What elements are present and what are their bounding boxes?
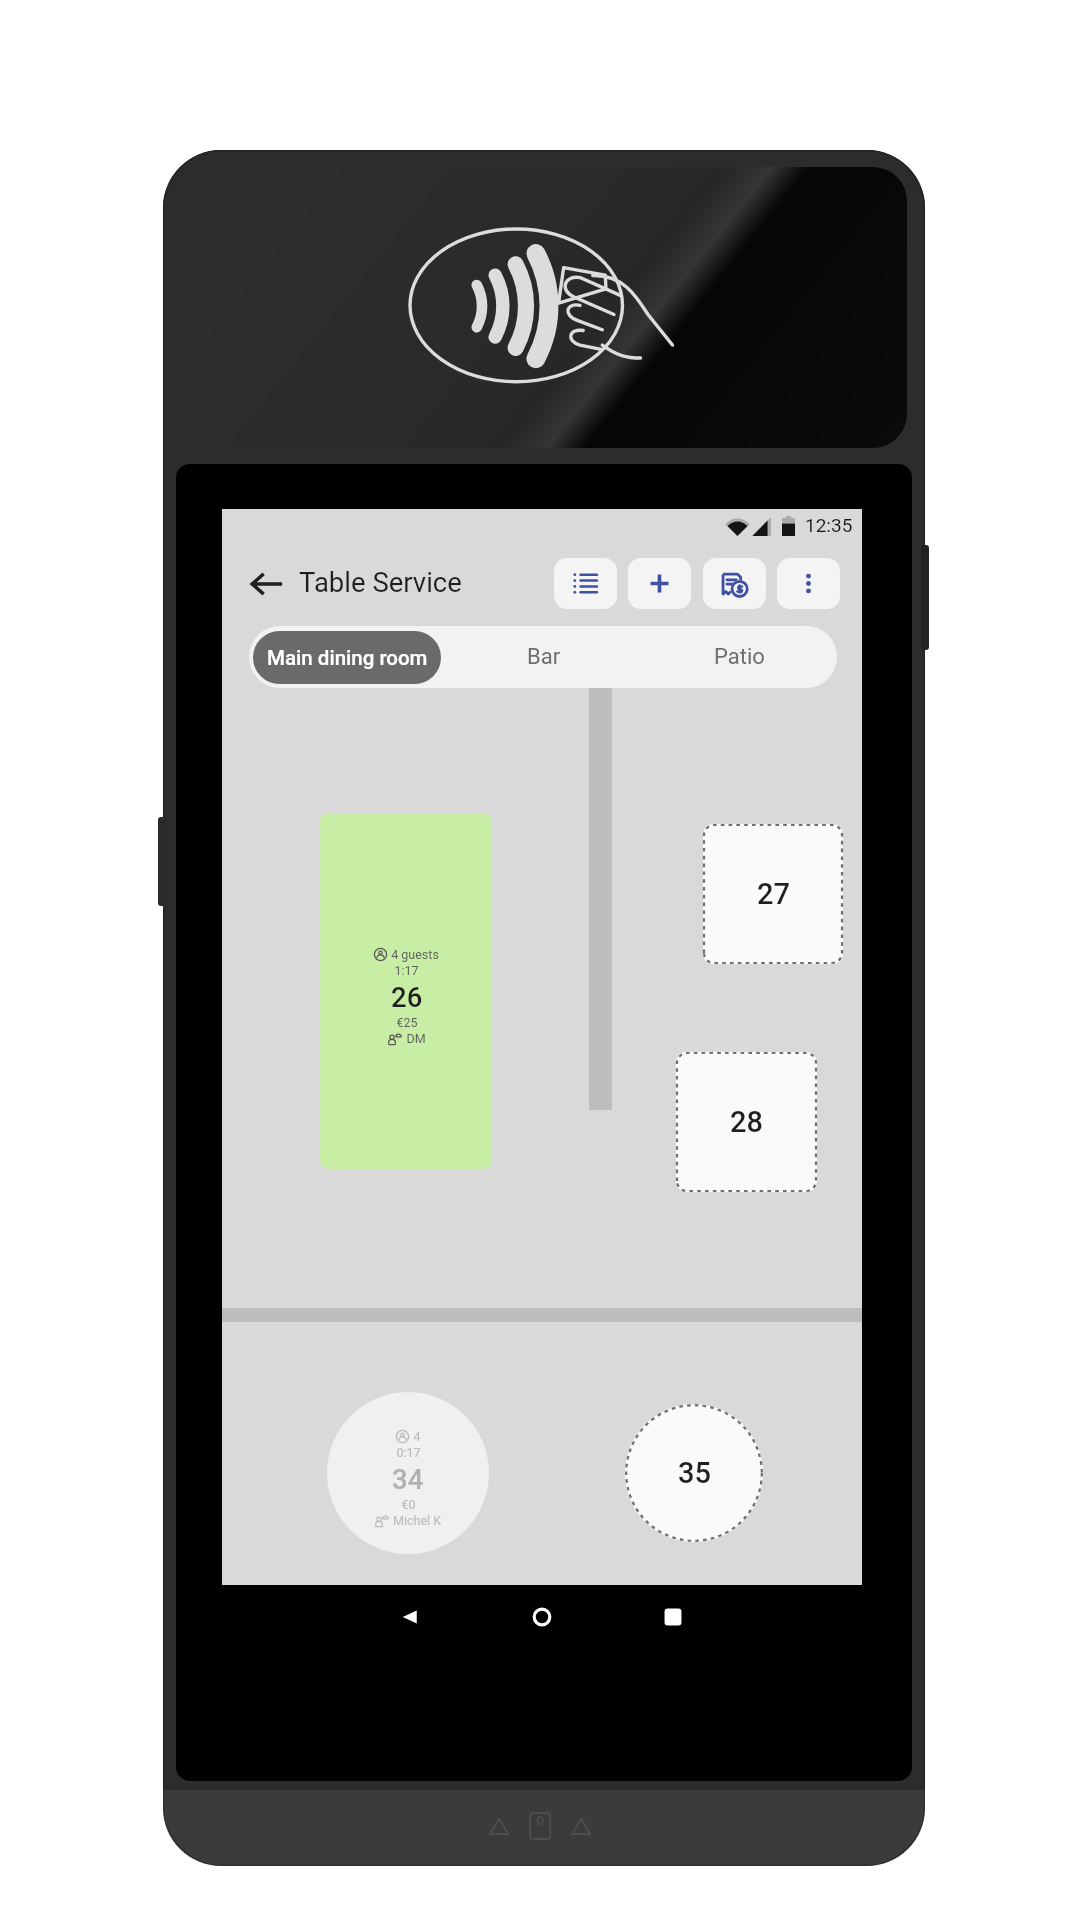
button[interactable]: 27 (703, 824, 843, 964)
staticText: 1:17 (394, 963, 419, 978)
button[interactable]: Back (370, 1585, 450, 1649)
staticText: Table Service (299, 566, 462, 598)
staticText: 27 (757, 877, 790, 911)
staticText: 28 (730, 1105, 763, 1139)
staticText: 35 (678, 1456, 711, 1490)
staticText: DM (406, 1031, 426, 1046)
staticText: Main dining room (267, 646, 428, 670)
button[interactable]: 35 (625, 1404, 763, 1542)
staticText: €0 (401, 1497, 416, 1512)
staticText: Bar (527, 644, 561, 670)
button[interactable]: Main dining room (253, 631, 441, 684)
staticText: 0:17 (396, 1445, 421, 1460)
button[interactable]: Patio (642, 626, 837, 688)
button[interactable]: Back (244, 562, 287, 605)
button[interactable]: Add table (628, 558, 691, 609)
button[interactable]: 4 (327, 1392, 489, 1554)
staticText: 4 (413, 1429, 421, 1444)
button[interactable]: Home (502, 1585, 582, 1649)
staticText: Patio (714, 644, 765, 670)
button[interactable]: Bills (703, 558, 766, 609)
staticText: 4 guests (391, 947, 439, 962)
staticText: 26 (391, 981, 423, 1013)
staticText: 12:35 (805, 514, 853, 536)
staticText: €25 (396, 1015, 418, 1030)
button[interactable]: More options (777, 558, 840, 609)
button[interactable]: Order list (554, 558, 617, 609)
button[interactable]: 4 guests (320, 813, 492, 1169)
staticText: 34 (392, 1463, 424, 1495)
button[interactable]: 28 (676, 1052, 817, 1192)
button[interactable]: Bar (445, 626, 642, 688)
staticText: Michel K (393, 1513, 441, 1528)
button[interactable]: Recent apps (633, 1585, 713, 1649)
